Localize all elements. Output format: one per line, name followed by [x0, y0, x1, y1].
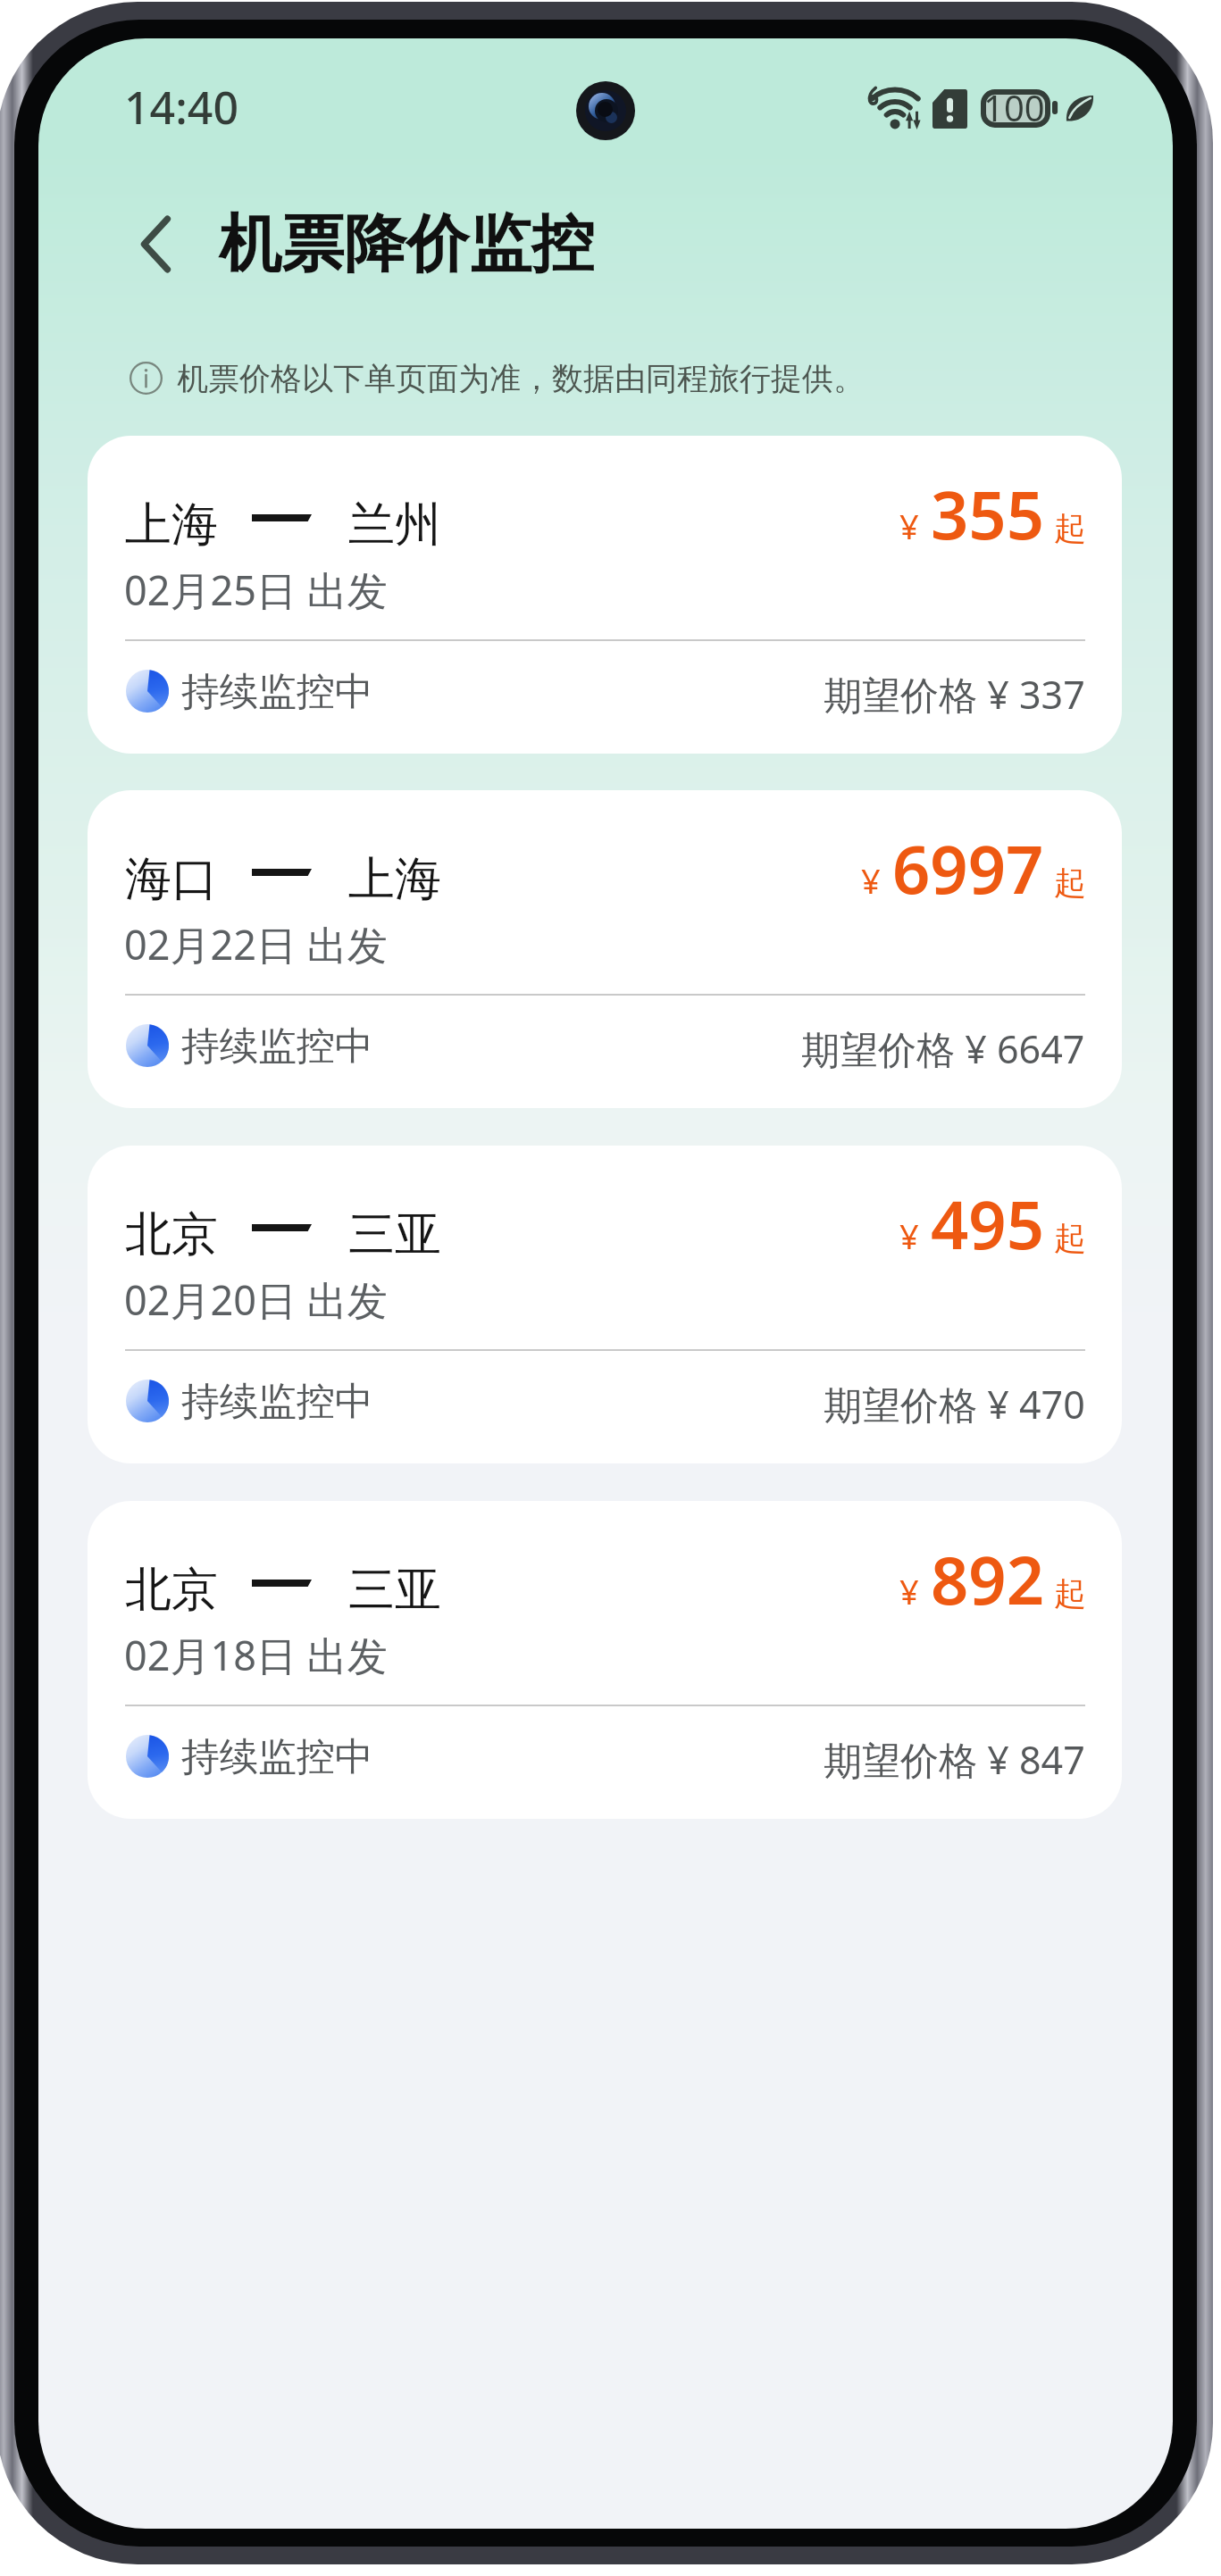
button[interactable]: 上海 [88, 436, 1122, 754]
staticText: 期望价格 ¥ 6647 [801, 1022, 1085, 1075]
staticText: 495 [931, 1179, 1044, 1269]
staticText: 02月22日 出发 [124, 917, 388, 971]
staticText: 起 [1054, 1573, 1086, 1613]
staticText: 起 [1054, 1218, 1086, 1258]
staticText: ¥ [899, 1568, 919, 1614]
staticText: 起 [1054, 863, 1086, 903]
staticText: 机票降价监控 [219, 205, 594, 284]
button[interactable]: Back [114, 203, 197, 285]
staticText: 上海 [125, 496, 218, 554]
staticText: 355 [931, 469, 1044, 559]
staticText: ¥ [899, 1213, 919, 1259]
staticText: 期望价格 ¥ 337 [824, 668, 1085, 721]
staticText: 892 [931, 1534, 1044, 1624]
staticText: 持续监控中 [181, 1022, 373, 1071]
staticText: 兰州 [348, 496, 441, 554]
staticText: 北京 [125, 1205, 218, 1264]
staticText: 持续监控中 [181, 1378, 373, 1426]
staticText: 北京 [125, 1561, 218, 1620]
button[interactable]: 北京 [88, 1146, 1122, 1463]
staticText: 02月25日 出发 [124, 563, 388, 617]
staticText: 期望价格 ¥ 470 [824, 1378, 1085, 1430]
staticText: 6997 [892, 823, 1044, 913]
staticText: 三亚 [348, 1205, 441, 1264]
staticText: 02月18日 出发 [124, 1628, 388, 1682]
staticText: 三亚 [348, 1561, 441, 1620]
staticText: 起 [1054, 508, 1086, 548]
staticText: ¥ [899, 503, 919, 549]
staticText: 100 [983, 83, 1045, 124]
staticText: 海口 [125, 850, 218, 909]
staticText: 持续监控中 [181, 668, 373, 716]
staticText: 02月20日 出发 [124, 1272, 388, 1327]
button[interactable]: 海口 [88, 790, 1122, 1108]
staticText: 上海 [348, 850, 441, 909]
staticText: ¥ [861, 857, 881, 904]
staticText: 机票价格以下单页面为准，数据由同程旅行提供。 [177, 359, 865, 398]
button[interactable]: 北京 [88, 1501, 1122, 1819]
staticText: 期望价格 ¥ 847 [824, 1733, 1085, 1786]
staticText: 持续监控中 [181, 1733, 373, 1781]
staticText: 14:40 [124, 77, 238, 138]
